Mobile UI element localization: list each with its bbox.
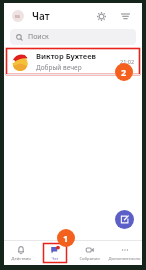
staticText: Чат <box>32 9 50 23</box>
staticText: Действия <box>11 256 31 262</box>
staticText: 2 <box>121 66 127 78</box>
staticText: Собрания <box>79 256 100 262</box>
button[interactable]: Собрания <box>72 241 107 265</box>
staticText: 1 <box>63 232 69 244</box>
staticText: Дополнительно <box>108 256 141 262</box>
button[interactable]: Settings <box>92 7 110 25</box>
button[interactable]: Дополнительно <box>107 241 142 265</box>
staticText: Поиск <box>28 32 49 42</box>
staticText: ВБ <box>15 14 21 19</box>
button[interactable]: Поиск <box>10 29 136 45</box>
button[interactable]: Profile <box>12 10 24 22</box>
button[interactable]: Filter <box>116 7 134 25</box>
button[interactable]: Чат <box>38 241 72 265</box>
staticText: Виктор Бухтеев <box>36 51 97 61</box>
button[interactable]: Виктор Бухтеев <box>6 48 140 75</box>
button[interactable]: New chat <box>115 210 134 229</box>
button[interactable]: Действия <box>4 241 38 265</box>
staticText: Чат <box>51 256 59 262</box>
staticText: 21:02 <box>120 58 135 65</box>
staticText: Добрый вечер <box>36 63 82 72</box>
